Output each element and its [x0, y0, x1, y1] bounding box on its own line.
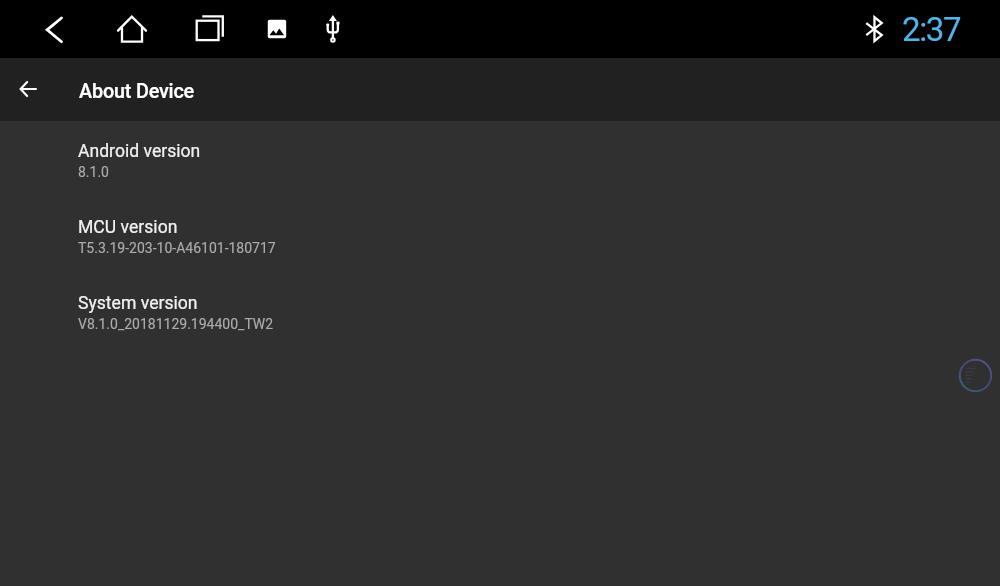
- button[interactable]: System version: [0, 293, 1000, 369]
- button[interactable]: Home: [116, 13, 148, 45]
- button[interactable]: Back: [38, 14, 70, 46]
- button[interactable]: Floating menu: [957, 357, 994, 394]
- button[interactable]: MCU version: [0, 217, 1000, 293]
- staticText: About Device: [79, 80, 195, 103]
- staticText: V8.1.0_20181129.194400_TW2: [78, 316, 274, 332]
- staticText: Android version: [78, 141, 201, 162]
- button[interactable]: Screenshot: [261, 13, 293, 45]
- staticText: T5.3.19-203-10-A46101-180717: [78, 240, 276, 256]
- staticText: System version: [78, 293, 198, 314]
- staticText: 2:37: [902, 10, 961, 49]
- button[interactable]: Navigate up: [11, 72, 45, 106]
- button[interactable]: Bluetooth: [858, 13, 890, 45]
- button[interactable]: Android version: [0, 141, 1000, 217]
- button[interactable]: Recent apps: [193, 13, 225, 45]
- button[interactable]: USB connected: [317, 13, 349, 45]
- staticText: MCU version: [78, 217, 178, 238]
- staticText: 8.1.0: [78, 164, 109, 180]
